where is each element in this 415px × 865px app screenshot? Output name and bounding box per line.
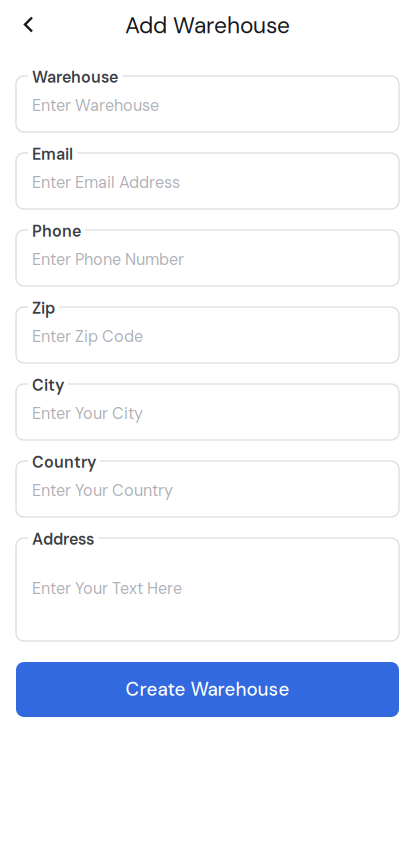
staticText: Warehouse bbox=[32, 67, 118, 88]
staticText: Email bbox=[32, 144, 73, 165]
staticText: Country bbox=[32, 452, 96, 473]
staticText: Enter Zip Code bbox=[32, 326, 143, 347]
button[interactable]: Enter Your City bbox=[16, 384, 399, 440]
staticText: Enter Your Text Here bbox=[32, 578, 182, 599]
staticText: Enter Warehouse bbox=[32, 95, 159, 116]
button[interactable]: Enter Your Country bbox=[16, 461, 399, 517]
button[interactable]: Create Warehouse bbox=[16, 662, 399, 717]
button[interactable]: Enter Zip Code bbox=[16, 307, 399, 363]
staticText: Address bbox=[32, 529, 94, 550]
staticText: Zip bbox=[32, 298, 55, 319]
button[interactable]: Enter Email Address bbox=[16, 153, 399, 209]
staticText: Enter Your City bbox=[32, 403, 143, 424]
staticText: Phone bbox=[32, 221, 81, 242]
staticText: City bbox=[32, 375, 64, 396]
staticText: Enter Email Address bbox=[32, 172, 180, 193]
button[interactable]: Back bbox=[0, 2, 48, 46]
staticText: Enter Phone Number bbox=[32, 249, 184, 270]
staticText: Enter Your Country bbox=[32, 480, 173, 501]
button[interactable]: Enter Your Text Here bbox=[16, 538, 399, 641]
staticText: Add Warehouse bbox=[125, 11, 290, 40]
button[interactable]: Enter Phone Number bbox=[16, 230, 399, 286]
button[interactable]: Enter Warehouse bbox=[16, 76, 399, 132]
staticText: Create Warehouse bbox=[125, 677, 289, 702]
